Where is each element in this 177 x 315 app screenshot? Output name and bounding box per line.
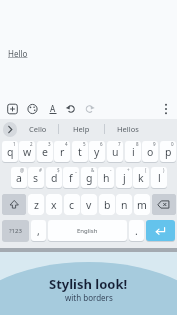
staticText: & (91, 167, 95, 173)
button[interactable] (45, 100, 61, 118)
button[interactable]: j (116, 167, 132, 188)
staticText: 8 (136, 141, 139, 147)
staticText: k (138, 171, 144, 185)
staticText: p (165, 145, 172, 159)
button[interactable]: n (116, 194, 132, 215)
button[interactable]: g (81, 167, 97, 188)
staticText: 5 (83, 141, 86, 147)
staticText: . (135, 224, 138, 238)
button[interactable] (5, 100, 21, 118)
staticText: 1 (13, 141, 16, 147)
staticText: ) (163, 167, 165, 173)
staticText: t (78, 145, 82, 159)
staticText: $ (57, 167, 60, 173)
button[interactable]: z (28, 194, 44, 215)
button[interactable]: e (37, 141, 53, 162)
staticText: i (132, 145, 135, 159)
button[interactable]: , (31, 220, 46, 241)
staticText: ( (145, 167, 147, 173)
button[interactable]: m (134, 194, 150, 215)
button[interactable]: f (63, 167, 79, 188)
button[interactable] (63, 100, 79, 118)
staticText: o (147, 145, 154, 159)
staticText: Help (73, 124, 90, 134)
staticText: 6 (100, 141, 103, 147)
button[interactable]: t (72, 141, 88, 162)
button[interactable] (158, 100, 174, 118)
staticText: + (127, 167, 130, 173)
button[interactable]: x (46, 194, 62, 215)
button[interactable]: o (142, 141, 158, 162)
staticText: s (33, 171, 39, 185)
staticText: @ (20, 167, 25, 173)
button[interactable]: Stylish look! (0, 252, 177, 315)
staticText: a (16, 171, 22, 185)
button[interactable] (2, 194, 26, 215)
button[interactable]: i (125, 141, 141, 162)
button[interactable] (152, 194, 176, 215)
staticText: 7 (118, 141, 121, 147)
button[interactable]: p (160, 141, 176, 162)
button[interactable]: v (81, 194, 97, 215)
staticText: 2 (30, 141, 33, 147)
staticText: Hellos (117, 124, 139, 134)
button[interactable]: h (98, 167, 114, 188)
button[interactable]: w (19, 141, 35, 162)
button[interactable]: c (64, 194, 80, 215)
staticText: u (112, 145, 119, 159)
button[interactable]: a (11, 167, 27, 188)
staticText: r (60, 145, 65, 159)
button[interactable]: Cello (18, 119, 58, 139)
button[interactable]: ?123 (2, 220, 29, 241)
staticText: e (42, 145, 48, 159)
staticText: v (86, 198, 92, 212)
staticText: h (103, 171, 110, 185)
button[interactable]: q (2, 141, 18, 162)
button[interactable] (146, 220, 175, 241)
staticText: Hello (8, 48, 28, 59)
button[interactable]: d (46, 167, 62, 188)
staticText: z (34, 198, 39, 212)
staticText: Stylish look! (49, 275, 128, 293)
staticText: c (69, 198, 75, 212)
staticText: b (104, 198, 111, 212)
button[interactable]: r (54, 141, 70, 162)
staticText: j (123, 171, 126, 185)
button[interactable]: u (107, 141, 123, 162)
staticText: English (77, 227, 98, 235)
staticText: 3 (48, 141, 51, 147)
button[interactable]: English (48, 220, 127, 241)
staticText: m (137, 198, 147, 212)
button[interactable]: Help (58, 119, 104, 139)
button[interactable]: l (151, 167, 167, 188)
staticText: - (110, 167, 112, 173)
button[interactable] (25, 100, 41, 118)
staticText: _ (75, 167, 77, 173)
button[interactable] (82, 100, 98, 118)
staticText: 4 (65, 141, 68, 147)
staticText: ?123 (9, 227, 22, 235)
staticText: f (69, 171, 73, 185)
button[interactable]: s (28, 167, 44, 188)
staticText: g (86, 171, 93, 185)
button[interactable]: y (89, 141, 105, 162)
staticText: w (23, 145, 32, 159)
staticText: with borders (65, 292, 113, 303)
button[interactable]: b (99, 194, 115, 215)
staticText: x (51, 198, 57, 212)
staticText: d (51, 171, 58, 185)
staticText: 9 (153, 141, 156, 147)
staticText: y (94, 145, 100, 159)
button[interactable] (3, 122, 17, 137)
button[interactable]: . (129, 220, 144, 241)
staticText: Cello (29, 124, 47, 134)
staticText: # (39, 167, 42, 173)
staticText: , (37, 224, 40, 238)
button[interactable]: Hellos (104, 119, 152, 139)
staticText: l (158, 171, 161, 185)
staticText: 0 (171, 141, 174, 147)
staticText: q (7, 145, 14, 159)
staticText: A (50, 103, 56, 114)
staticText: n (121, 198, 128, 212)
button[interactable]: k (133, 167, 149, 188)
